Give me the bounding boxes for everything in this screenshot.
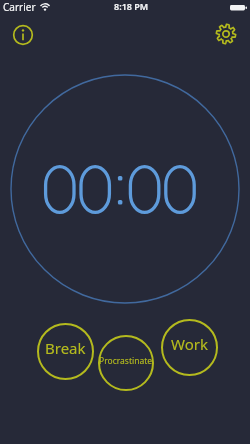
staticText: Work: [171, 334, 208, 354]
button[interactable]: [215, 23, 237, 45]
button[interactable]: [12, 24, 34, 46]
staticText: 8:18 PM: [114, 0, 149, 12]
staticText: Carrier: [3, 0, 36, 14]
button[interactable]: Break: [37, 323, 94, 380]
staticText: Procrastinate: [99, 355, 153, 367]
staticText: Break: [45, 338, 86, 358]
button[interactable]: Work: [161, 319, 218, 376]
button[interactable]: Procrastinate: [98, 335, 154, 391]
